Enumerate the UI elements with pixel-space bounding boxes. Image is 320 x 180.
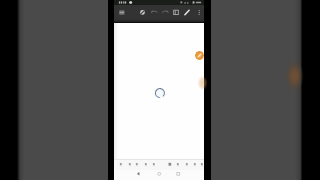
button[interactable]: Document outline xyxy=(172,5,181,23)
button[interactable]: Format tool 9 xyxy=(192,159,197,170)
button[interactable]: Format tool 3 xyxy=(134,159,139,170)
button[interactable]: Format tool 7 xyxy=(175,159,180,170)
button[interactable]: Format tool 8 xyxy=(184,159,189,170)
button[interactable]: New document xyxy=(195,51,204,60)
button[interactable]: Format tool 2 xyxy=(127,159,132,170)
button[interactable]: Format tool 4 xyxy=(143,159,148,170)
button[interactable]: Redo xyxy=(161,5,170,23)
button[interactable]: Navigation menu xyxy=(118,5,127,23)
button[interactable]: More options xyxy=(195,5,204,23)
button[interactable]: Home xyxy=(156,170,162,180)
button[interactable]: Undo xyxy=(150,5,159,23)
button[interactable]: Recent apps xyxy=(175,170,181,180)
button[interactable]: Format tool 6 xyxy=(167,159,172,170)
button[interactable]: Format tool 10 xyxy=(199,159,204,170)
button[interactable]: Format tool 1 xyxy=(118,159,123,170)
button[interactable]: Format tool 5 xyxy=(151,159,156,170)
button[interactable]: Offline status xyxy=(138,5,147,23)
button[interactable]: Edit xyxy=(183,5,192,23)
button[interactable]: Back xyxy=(135,170,141,180)
